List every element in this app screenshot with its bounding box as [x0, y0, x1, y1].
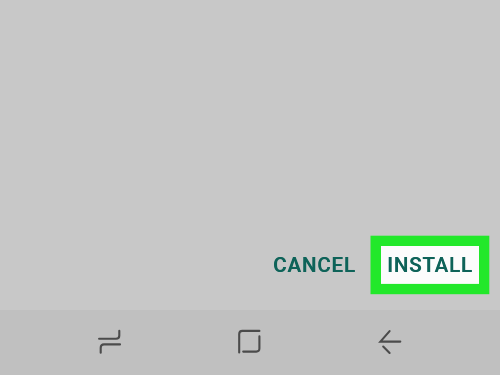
button[interactable]: Recent apps — [84, 316, 135, 367]
staticText: INSTALL — [387, 253, 473, 277]
staticText: CANCEL — [273, 253, 356, 277]
button[interactable]: Home — [224, 316, 275, 367]
staticText: INSTALL — [387, 253, 473, 277]
button[interactable]: Back — [365, 316, 416, 367]
button[interactable]: CANCEL — [262, 246, 366, 284]
staticText: CANCEL — [273, 253, 356, 277]
button[interactable]: INSTALL — [381, 246, 479, 284]
